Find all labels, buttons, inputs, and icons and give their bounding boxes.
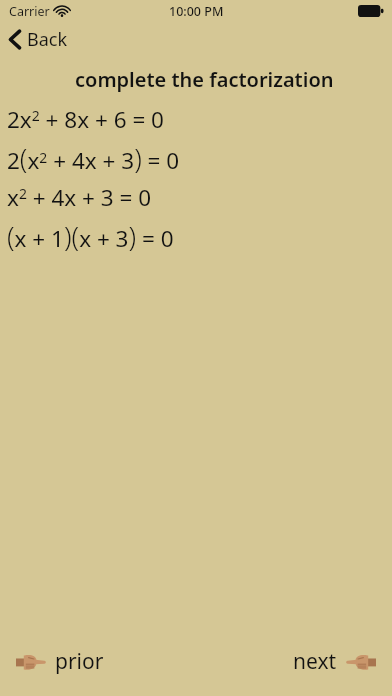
other: Back xyxy=(9,30,21,49)
staticText: (x + 1)(x + 3) = 0 xyxy=(7,218,174,255)
staticText: 2(x2 + 4x + 3) = 0 xyxy=(7,140,180,177)
button[interactable]: next xyxy=(287,641,382,682)
staticText: Carrier xyxy=(9,3,50,20)
staticText: Back xyxy=(27,27,68,52)
button[interactable]: Back xyxy=(0,23,82,56)
staticText: 2x2 + 8x + 6 = 0 xyxy=(7,104,164,135)
staticText: prior xyxy=(55,647,104,676)
button[interactable]: prior xyxy=(10,641,110,682)
staticText: next xyxy=(293,647,337,676)
staticText: complete the factorization xyxy=(75,66,334,93)
staticText: 10:00 PM xyxy=(169,3,224,20)
staticText: x2 + 4x + 3 = 0 xyxy=(7,182,152,213)
